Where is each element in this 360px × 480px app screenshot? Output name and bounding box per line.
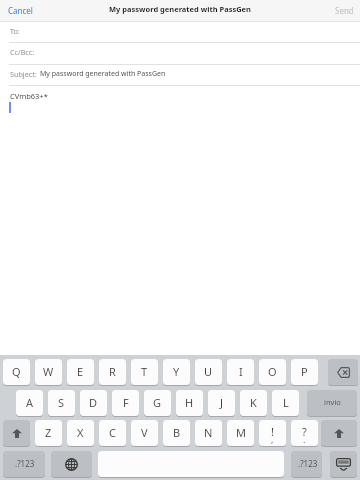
staticText: S: [58, 395, 65, 410]
button[interactable]: Cc/Bcc:: [0, 43, 360, 65]
button[interactable]: Z: [35, 420, 62, 448]
button[interactable]: Q: [3, 359, 30, 387]
staticText: .?123: [15, 458, 35, 469]
button[interactable]: A: [16, 390, 43, 418]
staticText: .: [303, 433, 306, 445]
staticText: J: [220, 395, 224, 410]
staticText: Z: [45, 425, 52, 440]
staticText: Cancel: [8, 5, 33, 16]
staticText: H: [185, 395, 194, 410]
button[interactable]: N: [195, 420, 222, 448]
staticText: Q: [12, 364, 21, 379]
button[interactable]: Shift: [321, 420, 357, 448]
button[interactable]: I: [227, 359, 254, 387]
button[interactable]: Backspace: [328, 359, 358, 387]
button[interactable]: invio: [307, 390, 357, 418]
staticText: My password generated with PassGen: [40, 69, 166, 79]
button[interactable]: Send: [331, 2, 358, 19]
button[interactable]: Switch keyboard: [51, 451, 92, 479]
button[interactable]: Subject:: [0, 65, 360, 86]
button[interactable]: U: [195, 359, 222, 387]
button[interactable]: R: [99, 359, 126, 387]
staticText: !: [271, 424, 274, 439]
staticText: D: [89, 395, 98, 410]
staticText: U: [204, 364, 213, 379]
staticText: Cc/Bcc:: [10, 47, 35, 57]
button[interactable]: E: [67, 359, 94, 387]
button[interactable]: W: [35, 359, 62, 387]
button[interactable]: Space: [98, 451, 284, 479]
button[interactable]: Y: [163, 359, 190, 387]
button[interactable]: Cancel: [4, 2, 37, 19]
button[interactable]: C: [99, 420, 126, 448]
button[interactable]: V: [131, 420, 158, 448]
button[interactable]: S: [48, 390, 75, 418]
staticText: R: [109, 364, 116, 379]
staticText: To:: [10, 26, 20, 36]
staticText: Y: [173, 364, 180, 379]
button[interactable]: ?: [291, 420, 318, 448]
staticText: C: [109, 425, 116, 440]
staticText: B: [173, 425, 181, 440]
staticText: M: [236, 425, 246, 440]
staticText: ?: [302, 424, 307, 439]
staticText: V: [141, 425, 148, 440]
button[interactable]: G: [144, 390, 171, 418]
staticText: F: [123, 395, 129, 410]
staticText: invio: [324, 397, 341, 407]
staticText: My password generated with PassGen: [109, 4, 251, 14]
button[interactable]: T: [131, 359, 158, 387]
staticText: E: [77, 364, 84, 379]
button[interactable]: J: [208, 390, 235, 418]
button[interactable]: To:: [0, 22, 360, 43]
button[interactable]: O: [259, 359, 286, 387]
staticText: P: [301, 364, 308, 379]
button[interactable]: F: [112, 390, 139, 418]
button[interactable]: Shift: [3, 420, 30, 448]
button[interactable]: P: [291, 359, 318, 387]
button[interactable]: .?123: [291, 451, 322, 479]
staticText: N: [204, 425, 213, 440]
staticText: I: [239, 364, 243, 379]
staticText: W: [43, 364, 54, 379]
staticText: L: [283, 395, 289, 410]
button[interactable]: !: [259, 420, 286, 448]
button[interactable]: D: [80, 390, 107, 418]
staticText: CVmb63+*: [10, 91, 48, 101]
staticText: X: [77, 425, 84, 440]
button[interactable]: .?123: [3, 451, 45, 479]
staticText: A: [26, 395, 34, 410]
button[interactable]: H: [176, 390, 203, 418]
button[interactable]: M: [227, 420, 254, 448]
staticText: G: [153, 395, 162, 410]
staticText: O: [268, 364, 277, 379]
staticText: .?123: [298, 458, 318, 469]
button[interactable]: Hide keyboard: [330, 451, 357, 479]
staticText: T: [141, 364, 148, 379]
button[interactable]: X: [67, 420, 94, 448]
staticText: Subject:: [10, 69, 37, 79]
button[interactable]: L: [272, 390, 299, 418]
staticText: Send: [335, 5, 354, 16]
staticText: ,: [271, 433, 274, 445]
button[interactable]: B: [163, 420, 190, 448]
staticText: K: [250, 395, 257, 410]
button[interactable]: K: [240, 390, 267, 418]
